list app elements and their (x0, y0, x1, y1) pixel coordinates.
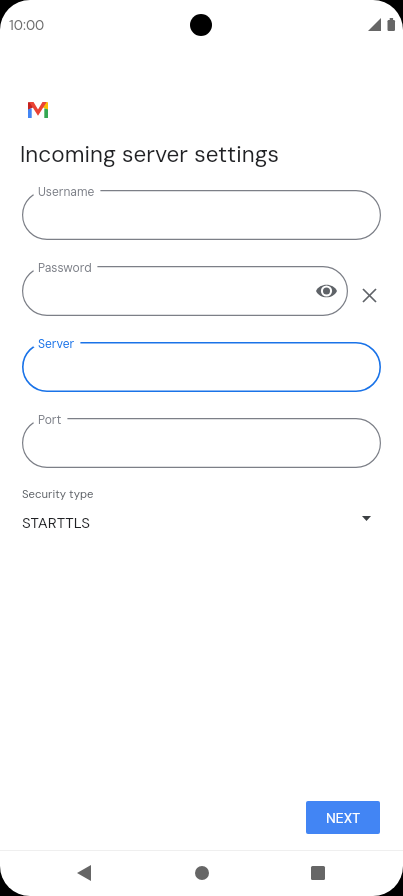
staticText: Security type (22, 487, 94, 502)
button[interactable]: Server (22, 342, 381, 392)
staticText: STARTTLS (22, 513, 90, 533)
button[interactable]: Recent apps (291, 850, 345, 896)
staticText: Password (38, 260, 92, 276)
button[interactable]: NEXT (306, 801, 380, 834)
staticText: Incoming server settings (20, 140, 280, 169)
button[interactable]: Back (57, 850, 111, 896)
button[interactable]: Clear (355, 281, 384, 310)
button[interactable]: Password (22, 266, 348, 316)
button[interactable]: Show password (316, 284, 337, 298)
staticText: Server (38, 336, 75, 352)
button[interactable]: Security type (18, 484, 385, 536)
staticText: Port (38, 412, 62, 428)
staticText: NEXT (326, 809, 361, 827)
button[interactable]: Home (175, 850, 229, 896)
staticText: 10:00 (9, 16, 45, 34)
staticText: Username (38, 184, 95, 200)
button[interactable]: Username (22, 190, 381, 240)
button[interactable]: Port (22, 418, 381, 468)
